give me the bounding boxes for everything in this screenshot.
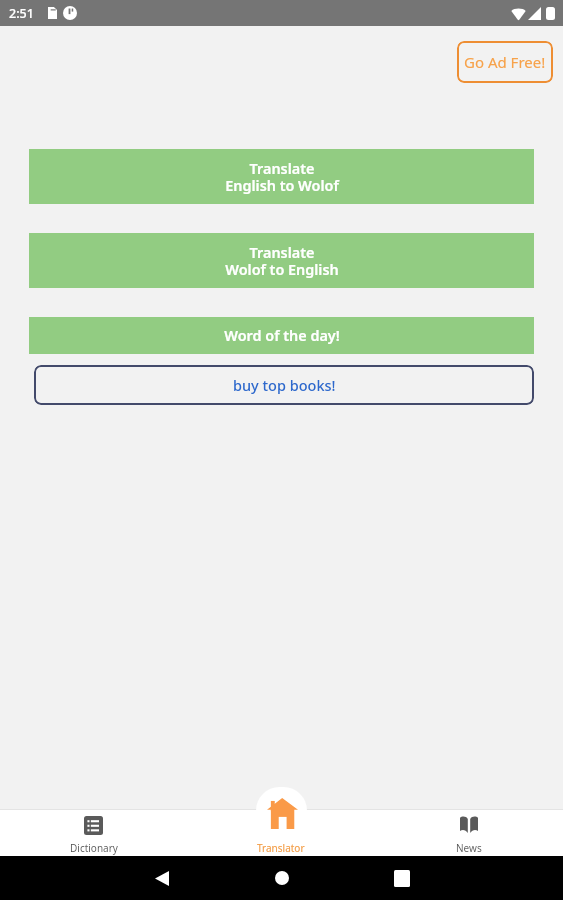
staticText: Dictionary	[70, 841, 118, 855]
staticText: buy top books!	[233, 375, 336, 395]
button[interactable]: Translator	[187, 809, 375, 856]
button[interactable]: News	[375, 809, 563, 856]
staticText: 2:51	[9, 5, 34, 22]
button[interactable]: Translator	[256, 787, 307, 834]
button[interactable]: Recents	[381, 857, 423, 899]
button[interactable]: Translate English to Wolof	[29, 149, 534, 204]
button[interactable]: Translate Wolof to English	[29, 233, 534, 288]
button[interactable]: Dictionary	[0, 809, 187, 856]
button[interactable]: Go Ad Free!	[457, 41, 553, 83]
button[interactable]: Back	[141, 857, 183, 899]
staticText: Go Ad Free!	[464, 52, 546, 72]
staticText: Translator	[257, 841, 305, 855]
button[interactable]: Word of the day!	[29, 317, 534, 354]
staticText: Translate Wolof to English	[225, 243, 339, 279]
staticText: Translate English to Wolof	[225, 159, 339, 195]
button[interactable]: Home	[261, 857, 303, 899]
staticText: Word of the day!	[224, 326, 340, 346]
button[interactable]: buy top books!	[34, 365, 534, 405]
staticText: News	[456, 841, 482, 855]
